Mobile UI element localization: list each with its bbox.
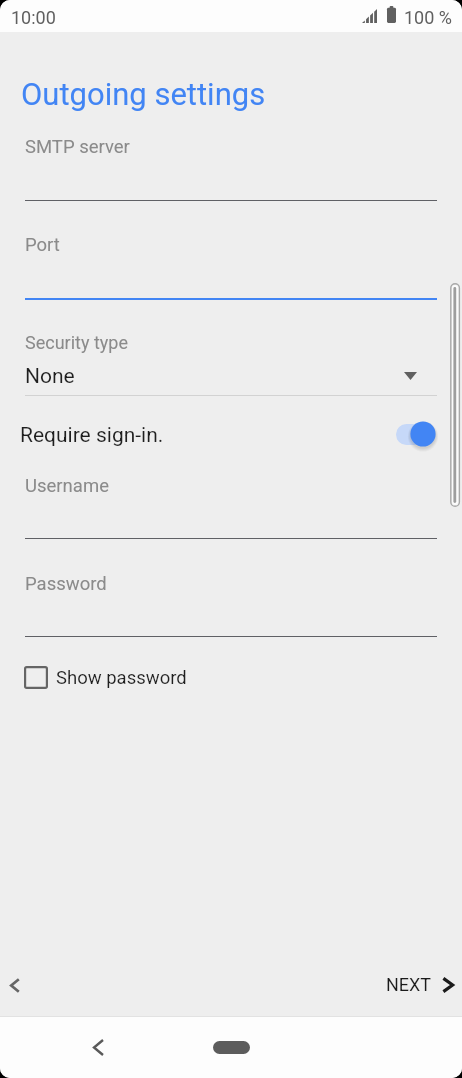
staticText: Require sign-in. [20, 423, 164, 448]
button[interactable]: Show password [18, 660, 197, 695]
staticText: Port [25, 234, 60, 256]
button[interactable]: Username [0, 475, 462, 545]
button[interactable]: NEXT [378, 966, 456, 1003]
button[interactable]: Password [0, 573, 462, 643]
staticText: Password [25, 573, 107, 595]
staticText: Show password [56, 667, 187, 689]
staticText: Security type [25, 332, 128, 353]
button[interactable]: Port [0, 234, 462, 305]
button[interactable]: Home [201, 1029, 262, 1066]
staticText: NEXT [386, 974, 432, 995]
staticText: None [25, 364, 75, 389]
button[interactable]: Back [0, 966, 32, 1005]
staticText: SMTP server [25, 136, 130, 158]
button[interactable]: Outgoing settings [21, 76, 266, 112]
staticText: Username [25, 475, 109, 497]
staticText: 10:00 [11, 7, 56, 28]
staticText: Outgoing settings [21, 76, 266, 112]
button[interactable]: SMTP server [0, 136, 462, 206]
button[interactable]: Security type [0, 326, 462, 398]
button[interactable]: Back [80, 1026, 117, 1069]
button[interactable]: Require sign-in toggle, on [393, 417, 439, 451]
button[interactable]: Require sign-in. [0, 410, 462, 458]
staticText: 100 % [404, 7, 452, 28]
